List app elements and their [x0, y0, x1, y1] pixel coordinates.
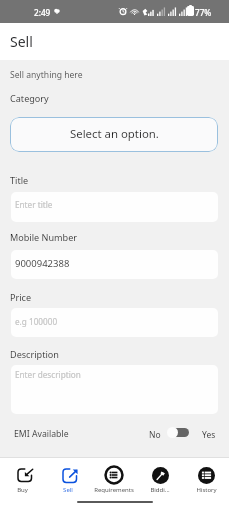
staticText: Biddi... [150, 486, 170, 494]
staticText: 2:49 [34, 7, 51, 18]
button[interactable]: Biddi... [137, 458, 183, 497]
button[interactable] [11, 308, 218, 337]
staticText: Sell [63, 486, 73, 494]
button[interactable]: EMI Available toggle [166, 425, 189, 439]
staticText: 9000942388 [15, 257, 70, 270]
staticText: Sell anything here [10, 69, 83, 81]
button[interactable]: Select an option. [10, 117, 218, 152]
staticText: Buy [17, 486, 28, 494]
staticText: No [149, 429, 161, 441]
staticText: Mobile Number [10, 231, 78, 243]
button[interactable]: History [183, 458, 229, 497]
button[interactable] [11, 365, 218, 414]
staticText: Enter title [15, 199, 53, 210]
staticText: e.g 100000 [15, 316, 58, 327]
staticText: Description [10, 348, 59, 360]
staticText: EMI Available [14, 428, 69, 440]
staticText: History [196, 486, 217, 494]
staticText: Enter description [15, 369, 81, 380]
staticText: Select an option. [70, 126, 159, 142]
button[interactable] [11, 250, 218, 279]
button[interactable]: Buy [0, 458, 45, 497]
staticText: Sell [10, 32, 33, 51]
staticText: Yes [202, 429, 216, 441]
staticText: Title [10, 174, 29, 186]
staticText: Category [10, 92, 49, 104]
button[interactable]: Sell [45, 458, 91, 497]
staticText: 77% [195, 7, 212, 18]
button[interactable] [11, 192, 218, 222]
staticText: Requirements [94, 486, 134, 494]
staticText: Price [10, 291, 32, 303]
button[interactable]: Requirements [91, 458, 137, 497]
